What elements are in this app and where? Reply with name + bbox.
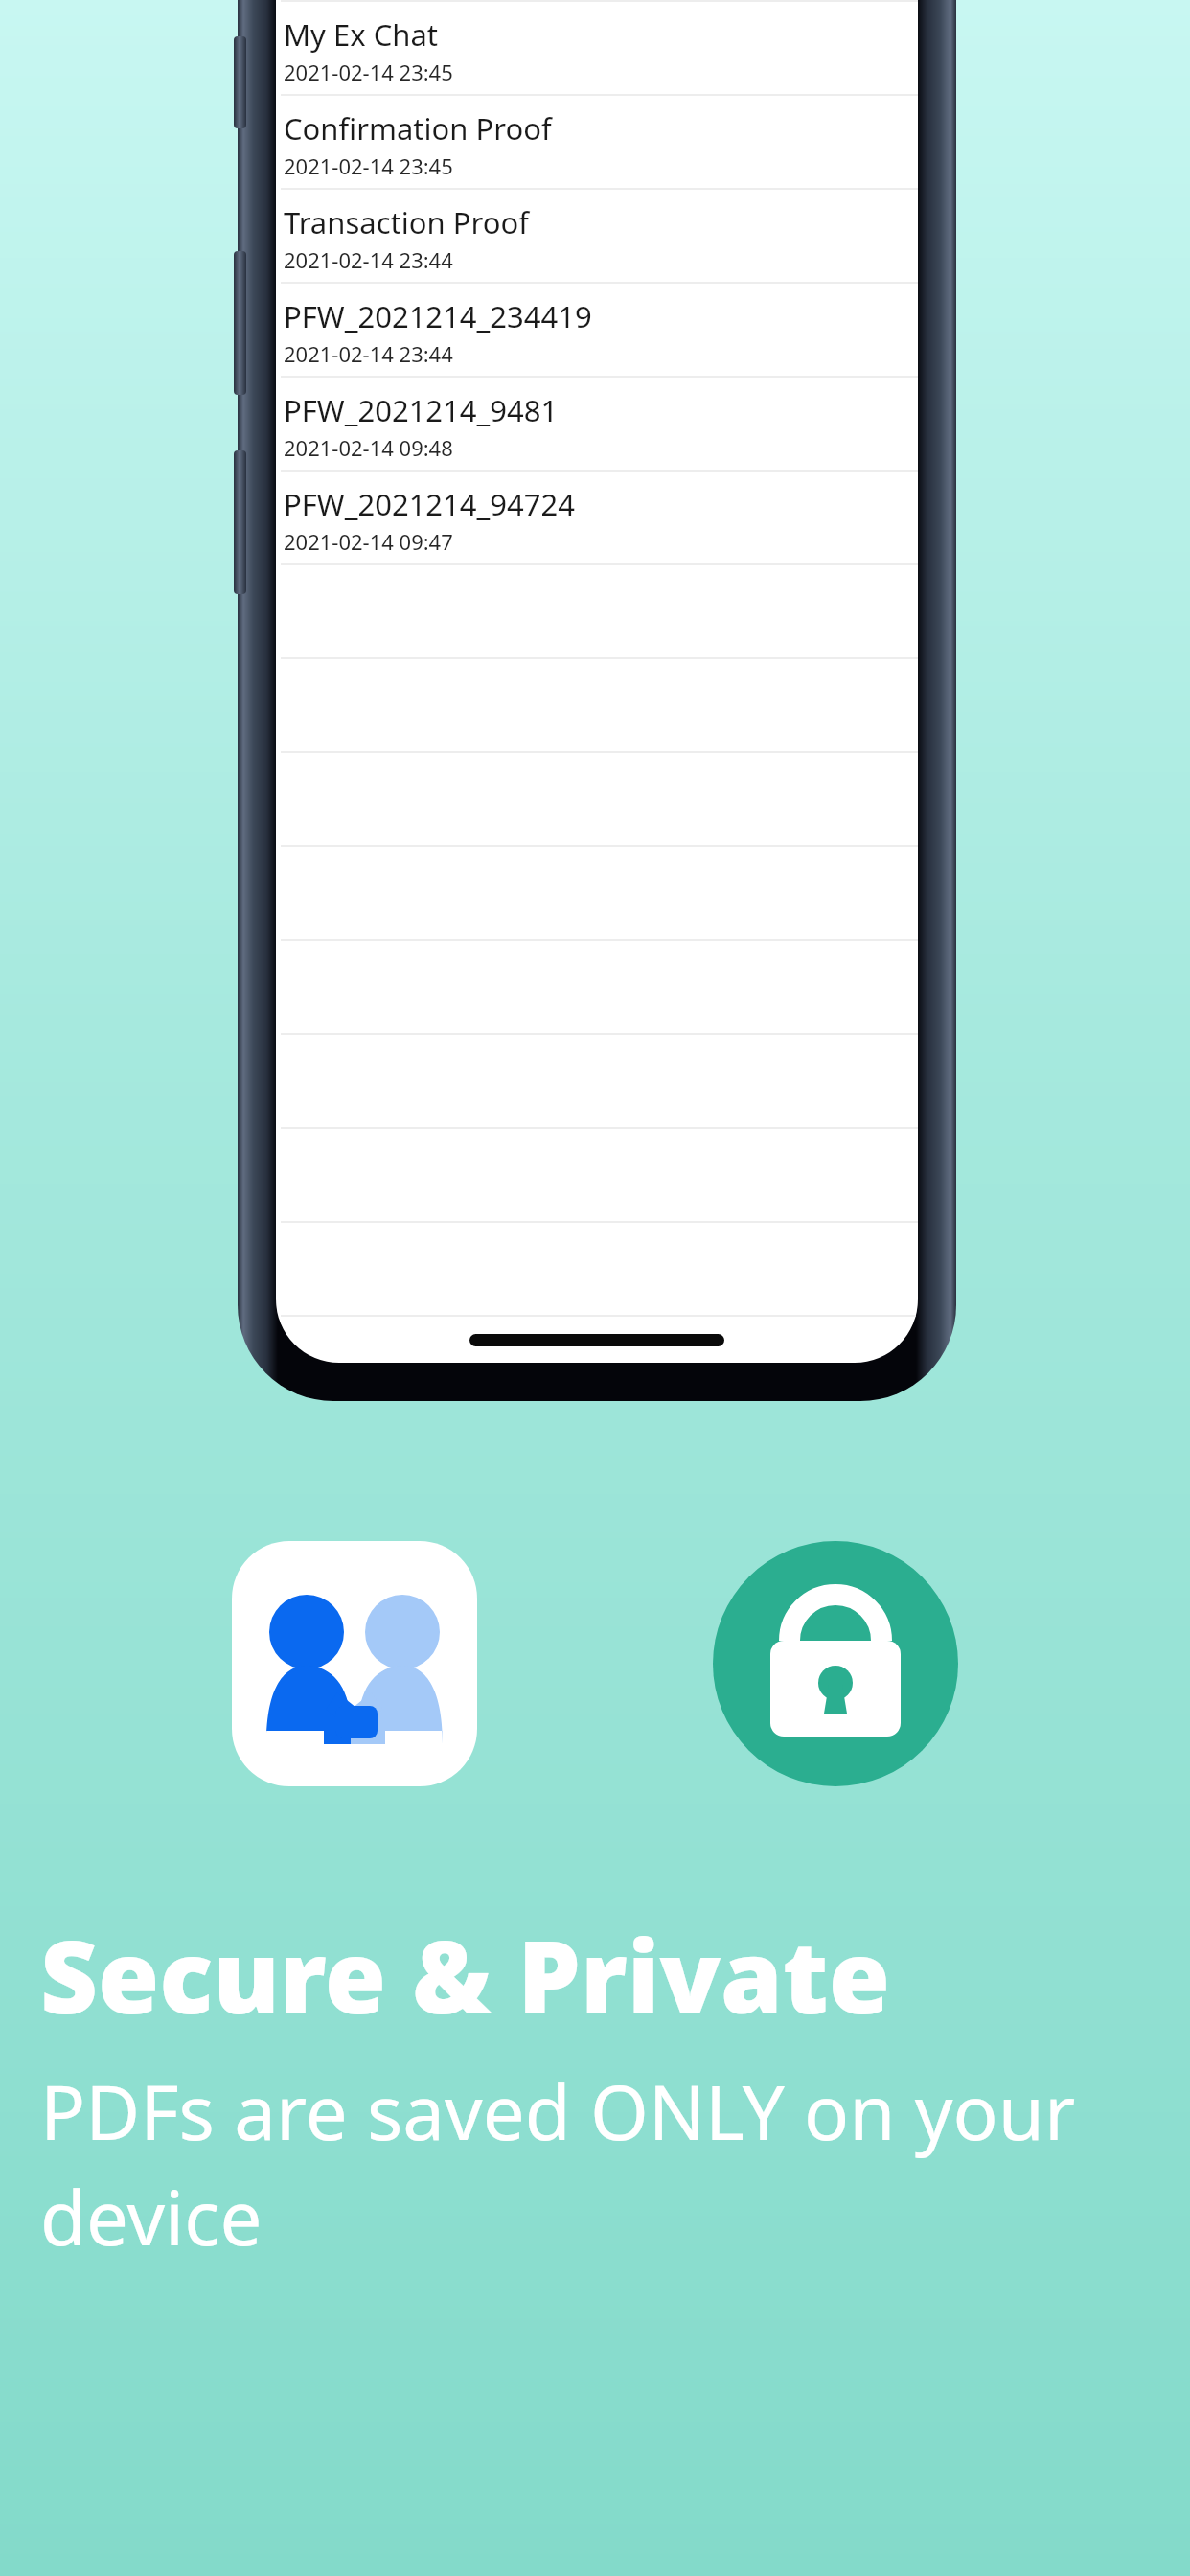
- staticText: PFW_2021214_94724: [284, 484, 575, 524]
- staticText: 2021-02-14 09:47: [284, 527, 453, 556]
- button[interactable]: Secure lock: [713, 1541, 958, 1786]
- button[interactable]: [276, 1223, 918, 1315]
- staticText: 2021-02-14 23:44: [284, 245, 453, 274]
- staticText: Confirmation Proof: [284, 108, 552, 149]
- button[interactable]: PFW_2021214_234419: [276, 284, 918, 376]
- staticText: Secure & Private: [40, 1907, 890, 2043]
- staticText: 2021-02-14 23:44: [284, 339, 453, 368]
- staticText: PFW_2021214_9481: [284, 390, 559, 430]
- staticText: 2021-02-14 23:45: [284, 151, 453, 180]
- button[interactable]: PFW_2021214_9481: [276, 378, 918, 470]
- staticText: Transaction Proof: [284, 202, 529, 242]
- staticText: 2021-02-14 23:45: [284, 57, 453, 86]
- button[interactable]: PFW_2021214_94724: [276, 471, 918, 563]
- button[interactable]: App icon, two people shaking hands: [232, 1541, 477, 1786]
- staticText: PFW_2021214_234419: [284, 296, 592, 336]
- staticText: PDFs are saved ONLY on your device: [40, 2060, 1171, 2267]
- button[interactable]: Transaction Proof: [276, 190, 918, 282]
- button[interactable]: Confirmation Proof: [276, 96, 918, 188]
- staticText: My Ex Chat: [284, 14, 439, 55]
- button[interactable]: My Ex Chat: [276, 2, 918, 94]
- staticText: 2021-02-14 09:48: [284, 433, 453, 462]
